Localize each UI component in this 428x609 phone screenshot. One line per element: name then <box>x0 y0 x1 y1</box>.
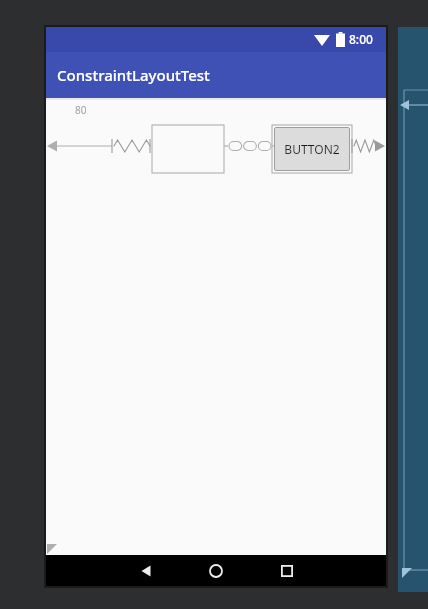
other: Wi-Fi <box>314 33 330 46</box>
staticText: 80 <box>75 103 87 117</box>
other: Battery <box>336 32 345 47</box>
staticText: 8:00 <box>349 31 373 47</box>
button[interactable]: Home <box>196 555 236 586</box>
staticText: BUTTON2 <box>284 141 340 157</box>
button[interactable]: Recent apps <box>267 555 307 586</box>
button[interactable] <box>398 27 428 592</box>
button[interactable]: BUTTON2 <box>274 127 350 171</box>
button[interactable]: Back <box>126 555 166 586</box>
staticText: ConstraintLayoutTest <box>57 65 210 85</box>
